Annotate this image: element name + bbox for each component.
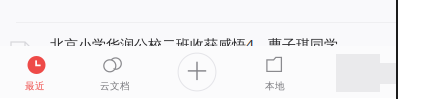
staticText: 云文档 [100,80,130,92]
staticText: 最近 [25,80,45,92]
button[interactable]: 本地 [235,46,315,98]
button[interactable]: 北京小学华润公校二班收获感悟4、曹子琪同学 [0,23,397,46]
staticText: 本地 [265,80,285,92]
button[interactable]: 云文档 [75,46,155,98]
button[interactable]: 最近 [0,46,75,98]
staticText: 北京小学华润公校二班收获感悟4、曹子琪同学 [50,35,338,54]
button[interactable]: 我 [315,46,395,98]
button[interactable]: 新建 [155,46,235,98]
